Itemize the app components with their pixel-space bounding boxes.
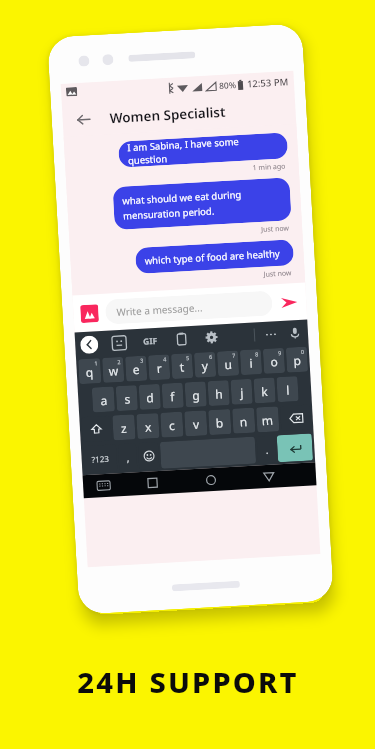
button[interactable]: ?123 — [83, 444, 117, 473]
button[interactable]: 8 — [240, 349, 262, 375]
staticText: p — [293, 352, 302, 368]
button[interactable]: f — [162, 382, 184, 409]
button[interactable]: 5 — [171, 353, 193, 379]
staticText: a — [100, 392, 108, 408]
staticText: 2 — [117, 358, 121, 365]
button[interactable]: z — [112, 414, 136, 440]
button[interactable]: Stickers — [112, 336, 127, 350]
staticText: w — [108, 362, 119, 379]
staticText: l — [286, 382, 291, 398]
staticText: 24H SUPPORT — [77, 662, 299, 701]
button[interactable]: d — [139, 384, 161, 410]
staticText: x — [144, 418, 152, 435]
button[interactable]: x — [136, 413, 160, 439]
staticText: 8 — [255, 350, 259, 357]
staticText: v — [192, 416, 200, 432]
staticText: 12:53 PM — [247, 75, 289, 90]
button[interactable]: s — [116, 385, 138, 411]
staticText: u — [224, 356, 233, 372]
staticText: t — [179, 358, 185, 375]
staticText: GIF — [143, 335, 158, 348]
button[interactable]: More — [266, 333, 276, 336]
button[interactable]: GIF — [143, 335, 158, 348]
button[interactable]: Hide keyboard — [83, 473, 124, 498]
staticText: 5 — [186, 354, 190, 361]
staticText: Just now — [263, 268, 292, 280]
staticText: , — [126, 450, 130, 465]
button[interactable]: 6 — [194, 352, 216, 378]
button[interactable]: Space — [160, 437, 256, 469]
staticText: 7 — [232, 351, 236, 359]
button[interactable]: Emoji — [138, 442, 159, 470]
button[interactable]: g — [184, 381, 207, 407]
staticText: 4 — [163, 355, 167, 363]
button[interactable]: Enter — [277, 433, 313, 462]
button[interactable]: 0 — [286, 347, 308, 373]
button[interactable]: 4 — [148, 354, 170, 380]
button[interactable]: 3 — [125, 355, 147, 382]
staticText: Women Specialist — [109, 103, 226, 127]
button[interactable]: h — [207, 380, 230, 406]
staticText: b — [215, 414, 224, 431]
button[interactable]: what should we eat during — [112, 177, 292, 230]
button[interactable]: Attach image — [80, 304, 99, 323]
staticText: m — [261, 411, 274, 428]
staticText: 80% — [219, 79, 236, 92]
staticText: Write a message... — [116, 300, 203, 319]
button[interactable]: Write a message... — [105, 290, 273, 325]
staticText: d — [146, 389, 155, 406]
button[interactable]: which type of food are healthy — [135, 239, 294, 274]
staticText: . — [265, 442, 269, 457]
button[interactable]: , — [118, 443, 137, 471]
staticText: Just now — [261, 223, 289, 235]
staticText: n — [239, 413, 248, 429]
button[interactable]: c — [160, 412, 184, 438]
staticText: f — [170, 388, 176, 404]
staticText: 1 — [94, 359, 98, 366]
staticText: s — [124, 390, 131, 407]
button[interactable]: Back — [68, 103, 99, 136]
staticText: r — [156, 360, 162, 376]
staticText: which type of food are healthy — [144, 247, 281, 267]
button[interactable]: 9 — [263, 348, 285, 374]
button[interactable]: v — [184, 410, 208, 436]
staticText: mensuration period. — [123, 204, 215, 223]
button[interactable]: j — [230, 379, 253, 405]
button[interactable]: Home — [181, 466, 241, 493]
staticText: y — [201, 357, 209, 373]
button[interactable]: 7 — [217, 350, 239, 376]
button[interactable]: Settings — [205, 330, 218, 344]
button[interactable]: l — [276, 376, 299, 402]
staticText: e — [132, 361, 140, 377]
button[interactable]: Back — [80, 335, 99, 354]
button[interactable]: Voice input — [289, 327, 301, 340]
staticText: 6 — [209, 353, 213, 360]
staticText: g — [192, 387, 201, 403]
staticText: 1 min ago — [252, 161, 286, 173]
button[interactable]: I am Sabina, I have some question — [118, 132, 288, 168]
button[interactable]: Clipboard — [175, 332, 188, 346]
staticText: c — [168, 417, 175, 433]
button[interactable]: b — [208, 409, 231, 435]
button[interactable]: . — [257, 435, 276, 463]
staticText: k — [261, 383, 269, 399]
button[interactable]: Back — [239, 463, 298, 489]
staticText: z — [120, 420, 127, 436]
staticText: ?123 — [91, 453, 110, 465]
staticText: 9 — [278, 349, 282, 356]
staticText: I am Sabina, I have some question — [127, 133, 279, 167]
button[interactable]: Send — [279, 292, 300, 313]
button[interactable]: 2 — [102, 357, 124, 383]
button[interactable]: k — [253, 377, 276, 403]
button[interactable]: Shift — [81, 416, 112, 442]
button[interactable]: n — [232, 408, 255, 434]
staticText: o — [270, 353, 279, 370]
staticText: h — [215, 385, 224, 402]
staticText: j — [240, 384, 245, 400]
staticText: 3 — [140, 357, 144, 364]
button[interactable]: 1 — [78, 358, 101, 384]
button[interactable]: a — [92, 386, 115, 413]
button[interactable]: Backspace — [280, 404, 311, 431]
button[interactable]: Recents — [122, 470, 183, 496]
button[interactable]: m — [256, 406, 279, 432]
